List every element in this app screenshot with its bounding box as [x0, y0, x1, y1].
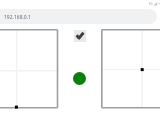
staticText: 192.168.0.1 [4, 14, 31, 21]
button[interactable]: Confirm [74, 30, 86, 42]
button[interactable]: 192.168.0.1 [0, 9, 157, 24]
button[interactable]: Right chart panel [102, 30, 160, 108]
button[interactable]: Connection status [73, 72, 86, 85]
button[interactable]: Left chart panel [0, 30, 58, 108]
